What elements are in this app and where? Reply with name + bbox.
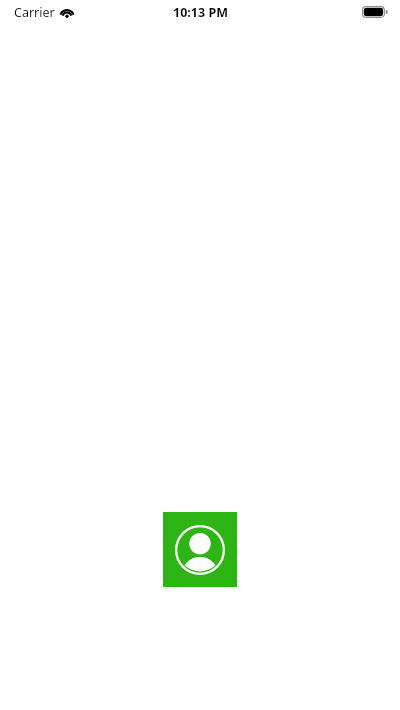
staticText: 10:13 PM (173, 4, 228, 21)
button[interactable]: Profile (163, 512, 237, 587)
staticText: Carrier (14, 4, 55, 21)
